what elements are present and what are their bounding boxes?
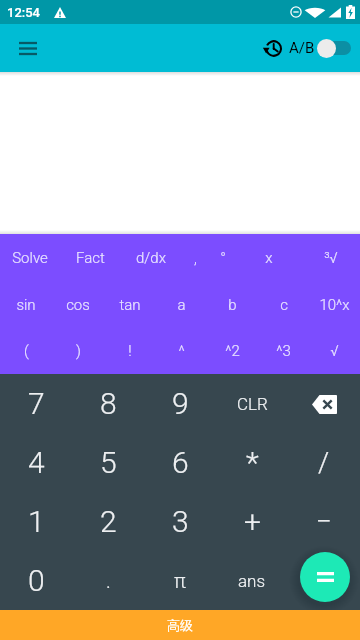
- button[interactable]: c: [258, 281, 309, 328]
- button[interactable]: 3: [144, 492, 216, 551]
- button[interactable]: a: [156, 281, 207, 328]
- staticText: Fact: [76, 249, 105, 267]
- button[interactable]: d/dx: [121, 234, 180, 281]
- staticText: .: [106, 569, 111, 592]
- staticText: !: [128, 342, 132, 360]
- button[interactable]: ans: [216, 551, 288, 610]
- button[interactable]: tan: [104, 281, 156, 328]
- button[interactable]: ³√: [302, 234, 360, 281]
- button[interactable]: b: [207, 281, 258, 328]
- staticText: 6: [172, 445, 189, 480]
- staticText: *: [246, 445, 259, 480]
- staticText: /: [318, 446, 330, 479]
- staticText: +: [244, 504, 261, 539]
- staticText: 3: [172, 504, 189, 539]
- staticText: π: [174, 569, 186, 592]
- button[interactable]: ^2: [207, 328, 258, 374]
- button[interactable]: Solve: [0, 234, 59, 281]
- button[interactable]: (: [0, 328, 52, 374]
- staticText: 12:54: [7, 5, 40, 20]
- button[interactable]: °: [210, 234, 236, 281]
- staticText: 0: [28, 563, 45, 598]
- button[interactable]: Equals: [300, 552, 350, 602]
- button[interactable]: ): [52, 328, 104, 374]
- staticText: CLR: [237, 394, 268, 414]
- button[interactable]: !: [104, 328, 156, 374]
- button[interactable]: Toggle A/B mode: [317, 37, 351, 59]
- button[interactable]: 5: [72, 433, 144, 492]
- staticText: 高级: [167, 617, 193, 633]
- button[interactable]: ^: [156, 328, 207, 374]
- button[interactable]: π: [144, 551, 216, 610]
- button[interactable]: .: [72, 551, 144, 610]
- button[interactable]: cos: [52, 281, 104, 328]
- staticText: 4: [28, 445, 45, 480]
- button[interactable]: ^3: [258, 328, 309, 374]
- staticText: tan: [119, 296, 141, 314]
- button[interactable]: Menu: [7, 27, 49, 69]
- button[interactable]: 9: [144, 374, 216, 433]
- staticText: 8: [100, 386, 117, 421]
- staticText: 1: [28, 504, 45, 539]
- button[interactable]: History: [254, 31, 288, 65]
- staticText: Solve: [12, 249, 48, 267]
- button[interactable]: √: [309, 328, 360, 374]
- staticText: −: [316, 505, 332, 538]
- staticText: ^: [178, 342, 185, 360]
- staticText: a: [177, 296, 186, 314]
- staticText: d/dx: [136, 249, 166, 267]
- button[interactable]: sin: [0, 281, 52, 328]
- staticText: sin: [16, 296, 36, 314]
- button[interactable]: *: [216, 433, 288, 492]
- button[interactable]: x: [236, 234, 302, 281]
- staticText: A/B: [289, 39, 315, 57]
- staticText: ,: [194, 249, 197, 267]
- button[interactable]: 0: [0, 551, 72, 610]
- staticText: 9: [172, 386, 189, 421]
- button[interactable]: 6: [144, 433, 216, 492]
- button[interactable]: 高级: [0, 610, 360, 640]
- staticText: b: [228, 296, 237, 314]
- button[interactable]: Backspace: [302, 382, 346, 426]
- staticText: ans: [238, 571, 266, 591]
- staticText: ³√: [324, 249, 338, 267]
- staticText: 2: [100, 504, 117, 539]
- staticText: ^3: [276, 342, 291, 360]
- staticText: 10^x: [319, 296, 350, 314]
- button[interactable]: 8: [72, 374, 144, 433]
- button[interactable]: 10^x: [309, 281, 360, 328]
- button[interactable]: CLR: [216, 374, 288, 433]
- staticText: cos: [66, 296, 90, 314]
- staticText: 5: [100, 445, 117, 480]
- staticText: 7: [28, 386, 45, 421]
- button[interactable]: −: [288, 492, 360, 551]
- staticText: ^2: [225, 342, 240, 360]
- button[interactable]: 4: [0, 433, 72, 492]
- button[interactable]: +: [216, 492, 288, 551]
- button[interactable]: ,: [180, 234, 210, 281]
- staticText: ): [76, 342, 81, 360]
- staticText: °: [220, 249, 226, 267]
- button[interactable]: 1: [0, 492, 72, 551]
- button[interactable]: 2: [72, 492, 144, 551]
- staticText: c: [280, 296, 288, 314]
- button[interactable]: 7: [0, 374, 72, 433]
- button[interactable]: Fact: [59, 234, 121, 281]
- button[interactable]: /: [288, 433, 360, 492]
- staticText: x: [265, 249, 273, 267]
- staticText: √: [330, 342, 339, 360]
- staticText: (: [24, 342, 29, 360]
